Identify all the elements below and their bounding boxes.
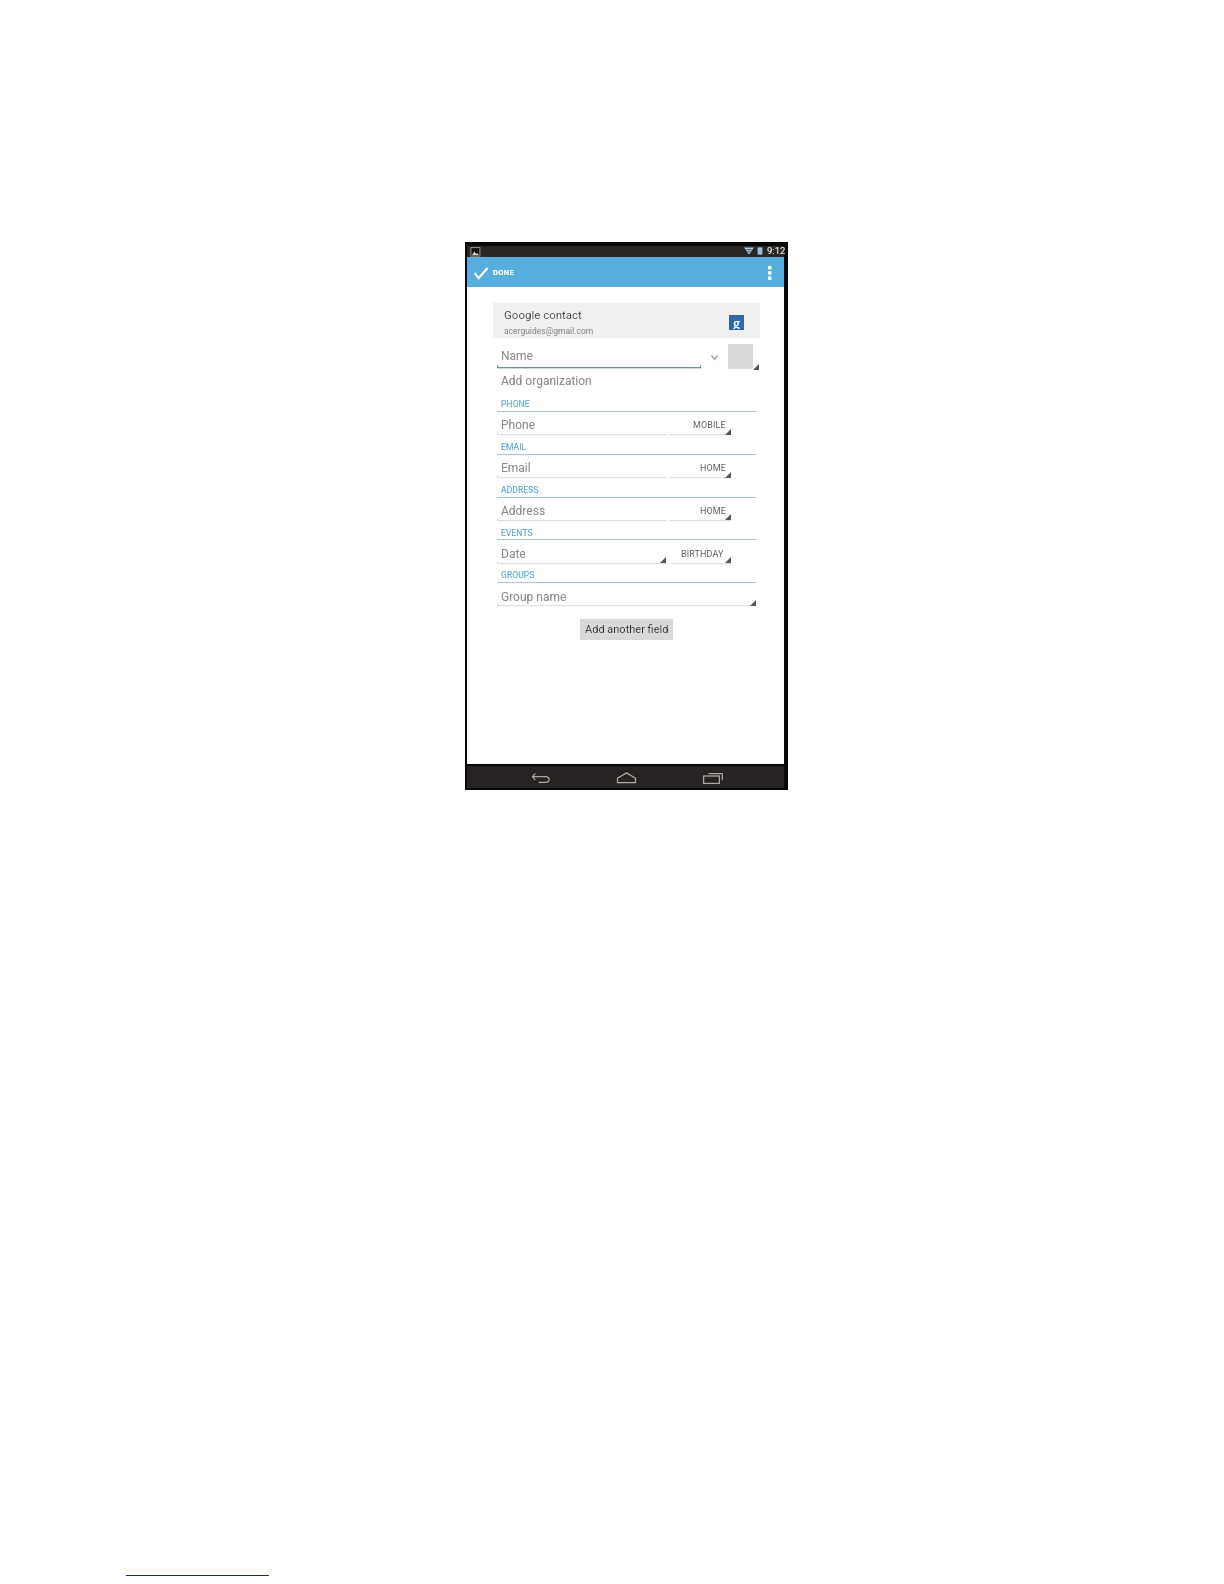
button[interactable]: More options bbox=[760, 257, 780, 287]
button[interactable]: DONE bbox=[468, 257, 520, 287]
button[interactable]: HOME bbox=[669, 503, 756, 521]
staticText: DONE bbox=[493, 268, 515, 277]
staticText: HOME bbox=[700, 463, 726, 474]
staticText: MOBILE bbox=[693, 420, 726, 431]
staticText: Add another field bbox=[585, 623, 669, 636]
staticText: acerguides@gmail.com bbox=[504, 326, 594, 336]
staticText: Google contact bbox=[504, 308, 582, 321]
button[interactable]: BIRTHDAY bbox=[669, 546, 756, 564]
staticText: Name bbox=[501, 349, 533, 363]
button[interactable]: Email bbox=[497, 460, 668, 478]
staticText: Date bbox=[501, 547, 526, 561]
button[interactable]: Address bbox=[497, 503, 668, 521]
staticText: BIRTHDAY bbox=[681, 549, 724, 560]
button[interactable]: Google contact bbox=[493, 303, 760, 338]
staticText: Address bbox=[501, 504, 546, 518]
staticText: Email bbox=[501, 461, 531, 475]
button[interactable]: Home bbox=[613, 768, 640, 787]
button[interactable]: Back bbox=[528, 768, 553, 787]
button[interactable]: Add another field bbox=[580, 619, 673, 640]
button[interactable]: MOBILE bbox=[669, 417, 756, 435]
button[interactable]: Date bbox=[497, 546, 668, 564]
button[interactable]: Phone bbox=[497, 417, 668, 435]
button[interactable]: HOME bbox=[669, 460, 756, 478]
staticText: Group name bbox=[501, 590, 567, 604]
staticText: g bbox=[733, 314, 740, 329]
button[interactable]: Recent apps bbox=[700, 770, 726, 787]
staticText: PHONE bbox=[501, 399, 530, 409]
button[interactable]: Add organization bbox=[497, 373, 647, 391]
staticText: 9:12 bbox=[767, 245, 786, 256]
button[interactable]: Name bbox=[497, 348, 701, 367]
staticText: EVENTS bbox=[501, 528, 533, 538]
staticText: ADDRESS bbox=[501, 485, 539, 495]
staticText: Phone bbox=[501, 418, 536, 432]
staticText: GROUPS bbox=[501, 570, 535, 580]
staticText: EMAIL bbox=[501, 442, 527, 452]
staticText: HOME bbox=[700, 506, 726, 517]
staticText: Add organization bbox=[501, 374, 592, 388]
button[interactable]: Group name bbox=[497, 589, 756, 607]
